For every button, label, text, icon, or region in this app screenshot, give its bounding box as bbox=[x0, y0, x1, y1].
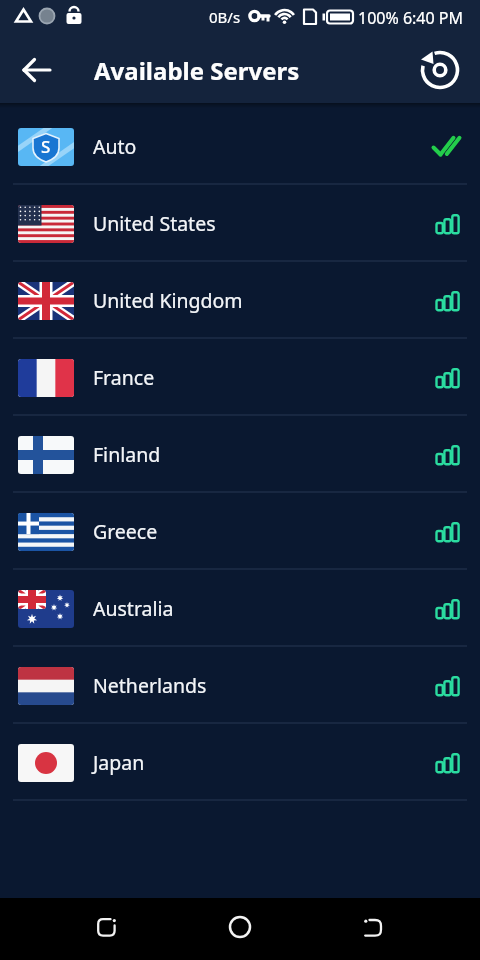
button[interactable]: United Kingdom bbox=[0, 262, 480, 339]
button[interactable]: United States bbox=[0, 185, 480, 262]
button[interactable]: Netherlands bbox=[0, 647, 480, 724]
button[interactable] bbox=[209, 898, 271, 960]
button[interactable]: S bbox=[0, 108, 480, 185]
staticText: Australia bbox=[93, 595, 174, 622]
button[interactable] bbox=[416, 46, 464, 94]
staticText: Japan bbox=[93, 749, 145, 776]
button[interactable] bbox=[342, 898, 404, 960]
staticText: 0B/s bbox=[209, 7, 241, 27]
button[interactable]: Australia bbox=[0, 570, 480, 647]
staticText: 100% 6:40 PM bbox=[358, 7, 464, 29]
staticText: Netherlands bbox=[93, 672, 207, 699]
staticText: Finland bbox=[93, 441, 161, 468]
staticText: France bbox=[93, 364, 155, 391]
button[interactable]: France bbox=[0, 339, 480, 416]
button[interactable]: Japan bbox=[0, 724, 480, 801]
button[interactable] bbox=[14, 47, 60, 93]
staticText: Greece bbox=[93, 518, 158, 545]
button[interactable]: Greece bbox=[0, 493, 480, 570]
staticText: United Kingdom bbox=[93, 287, 243, 314]
button[interactable] bbox=[75, 898, 137, 960]
staticText: Available Servers bbox=[94, 54, 300, 87]
button[interactable]: Finland bbox=[0, 416, 480, 493]
staticText: United States bbox=[93, 210, 216, 237]
staticText: S bbox=[41, 135, 51, 158]
staticText: Auto bbox=[93, 133, 137, 160]
